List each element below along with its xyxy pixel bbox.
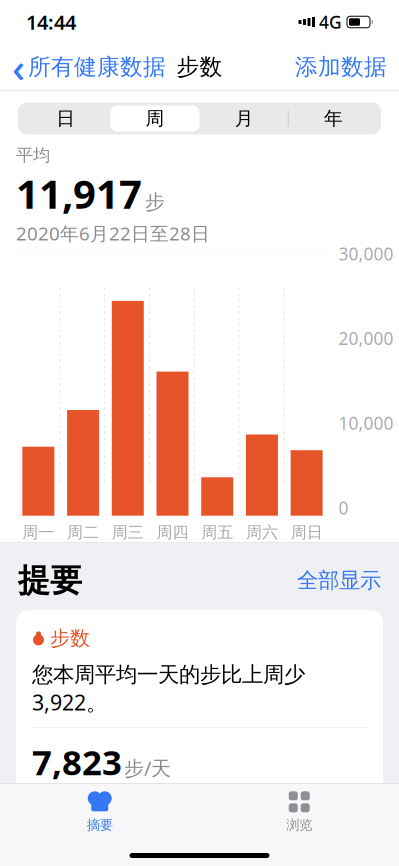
button[interactable]: 摘要 [0, 783, 199, 833]
button[interactable]: 全部显示 [297, 563, 381, 598]
staticText: 30,000 [338, 242, 393, 265]
staticText: 全部显示 [297, 567, 381, 594]
staticText: 11,917 [16, 167, 142, 220]
button[interactable]: ‹ [12, 34, 166, 99]
staticText: 年 [324, 107, 343, 130]
staticText: 周 [145, 107, 164, 130]
staticText: 20,000 [338, 327, 393, 350]
staticText: 周四 [156, 523, 188, 542]
staticText: 周日 [291, 523, 323, 542]
staticText: 步 [145, 190, 165, 214]
staticText: 2020年6月22日至28日 [16, 221, 210, 246]
button[interactable]: 年 [289, 105, 378, 131]
staticText: 步数 [176, 53, 222, 81]
staticText: 月 [235, 107, 254, 130]
staticText: 提要 [18, 561, 82, 600]
staticText: 10,000 [338, 411, 393, 434]
staticText: 周一 [22, 523, 54, 542]
staticText: 0 [338, 496, 348, 519]
staticText: ‹ [12, 40, 25, 93]
staticText: 周六 [246, 523, 278, 542]
staticText: 周三 [112, 523, 144, 542]
button[interactable]: 周 [110, 105, 199, 131]
button[interactable]: 月 [199, 105, 289, 131]
staticText: 步数 [50, 626, 90, 651]
staticText: 添加数据 [295, 53, 387, 81]
staticText: 日 [56, 107, 75, 130]
button[interactable]: 日 [21, 105, 110, 131]
staticText: 步/天 [124, 755, 171, 781]
staticText: 平均 [16, 144, 50, 166]
button[interactable]: 浏览 [199, 783, 399, 833]
staticText: 7,823 [32, 739, 122, 785]
staticText: 4G [319, 10, 342, 33]
staticText: 周五 [201, 523, 233, 542]
staticText: 摘要 [87, 817, 113, 833]
staticText: 周二 [67, 523, 99, 542]
staticText: 您本周平均一天的步比上周少 3,922。 [32, 660, 305, 716]
staticText: 浏览 [286, 817, 312, 833]
button[interactable]: 步数 [16, 610, 383, 829]
staticText: 14:44 [26, 9, 76, 35]
staticText: 所有健康数据 [28, 53, 166, 81]
button[interactable]: 添加数据 [295, 47, 387, 87]
